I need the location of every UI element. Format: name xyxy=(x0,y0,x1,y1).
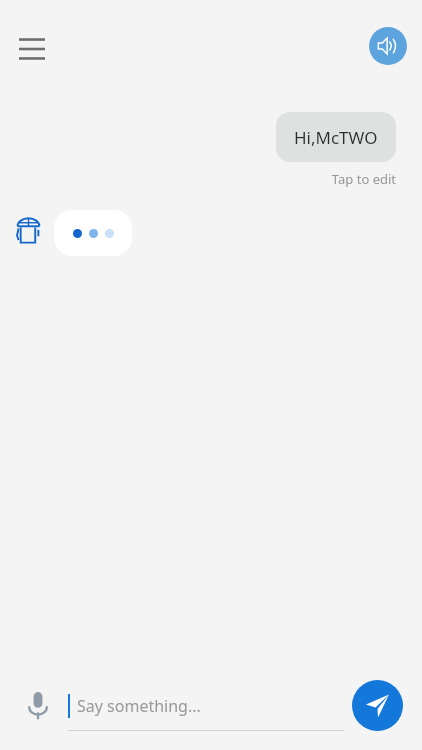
staticText: Hi,McTWO xyxy=(294,126,378,149)
button[interactable]: Send xyxy=(352,680,403,731)
button[interactable]: Hi,McTWO xyxy=(276,112,396,162)
button[interactable]: Voice input xyxy=(14,681,62,729)
button[interactable]: Say something... xyxy=(68,679,344,731)
button[interactable]: Assistant is typing xyxy=(54,210,132,256)
staticText: Say something... xyxy=(77,695,201,717)
other: Assistant avatar xyxy=(16,217,42,249)
button[interactable]: Menu xyxy=(10,27,54,71)
button[interactable]: Sound xyxy=(369,27,407,65)
button[interactable]: Tap to edit xyxy=(331,170,396,188)
